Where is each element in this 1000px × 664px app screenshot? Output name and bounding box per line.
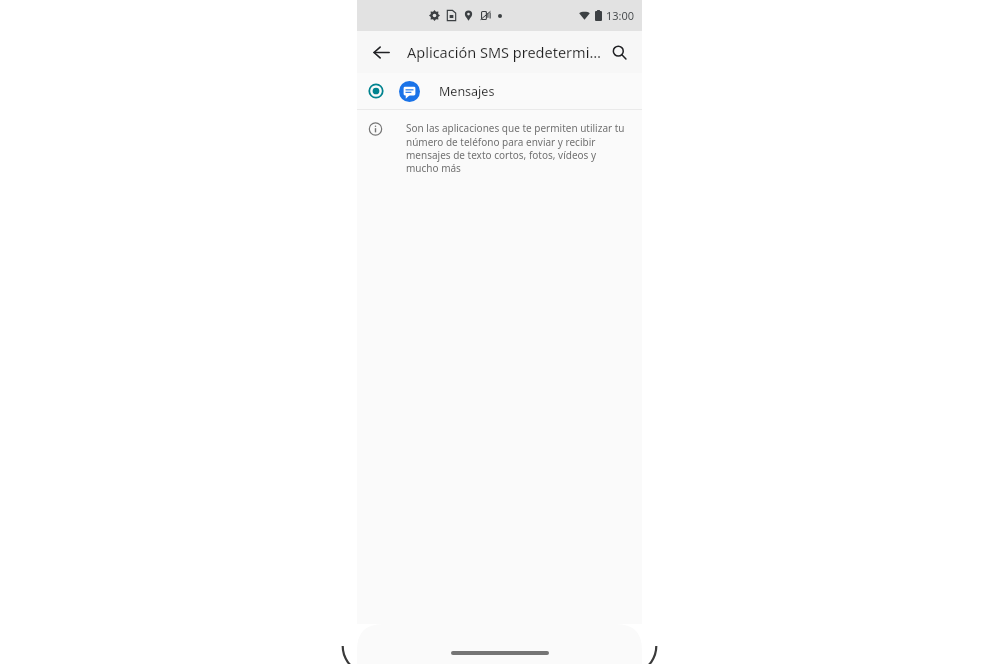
staticText: Mensajes xyxy=(439,83,495,100)
button[interactable]: Inicio xyxy=(451,651,549,655)
button[interactable]: Buscar xyxy=(602,35,636,69)
button[interactable]: Mensajes xyxy=(357,73,642,109)
staticText: Son las aplicaciones que te permiten uti… xyxy=(406,121,625,175)
button[interactable]: Atrás xyxy=(362,33,400,71)
staticText: 13:00 xyxy=(606,8,635,23)
staticText: Aplicación SMS predetermina… xyxy=(407,42,602,62)
